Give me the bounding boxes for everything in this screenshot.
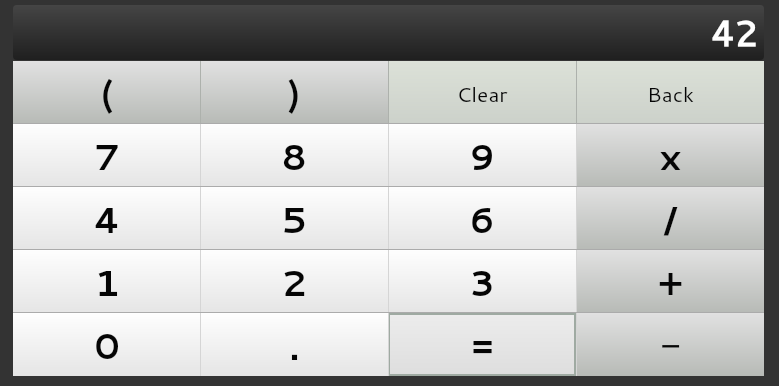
button[interactable]: Clear <box>388 61 576 124</box>
staticText: Clear <box>456 79 508 109</box>
button[interactable]: 6 <box>388 187 576 250</box>
button[interactable]: = <box>390 315 574 374</box>
staticText: 0 <box>94 320 120 371</box>
staticText: / <box>664 194 677 245</box>
staticText: 2 <box>281 257 307 308</box>
staticText: 42 <box>711 6 758 58</box>
staticText: 3 <box>469 257 495 308</box>
staticText: − <box>660 321 681 370</box>
button[interactable]: ( <box>13 61 200 124</box>
button[interactable]: 0 <box>13 313 200 376</box>
button[interactable]: 5 <box>200 187 388 250</box>
staticText: Back <box>647 79 694 109</box>
button[interactable]: + <box>576 250 764 313</box>
staticText: 7 <box>94 131 120 182</box>
staticText: 4 <box>93 194 121 245</box>
button[interactable]: . <box>200 313 388 376</box>
staticText: = <box>470 320 495 371</box>
staticText: 6 <box>469 194 495 245</box>
button[interactable]: ) <box>200 61 388 124</box>
staticText: 5 <box>281 194 307 245</box>
staticText: . <box>289 320 300 371</box>
staticText: 1 <box>94 257 120 308</box>
staticText: ) <box>288 69 301 117</box>
button[interactable]: 4 <box>13 187 200 250</box>
button[interactable]: x <box>576 124 764 187</box>
staticText: x <box>659 131 681 182</box>
staticText: 9 <box>469 131 495 182</box>
button[interactable]: − <box>576 313 764 376</box>
staticText: + <box>658 257 683 308</box>
button[interactable]: Back <box>576 61 764 124</box>
button[interactable]: 7 <box>13 124 200 187</box>
staticText: ( <box>100 69 113 117</box>
button[interactable]: 3 <box>388 250 576 313</box>
button[interactable]: / <box>576 187 764 250</box>
button[interactable]: 2 <box>200 250 388 313</box>
button[interactable]: 9 <box>388 124 576 187</box>
button[interactable]: 1 <box>13 250 200 313</box>
staticText: 8 <box>281 131 307 182</box>
button[interactable]: 8 <box>200 124 388 187</box>
